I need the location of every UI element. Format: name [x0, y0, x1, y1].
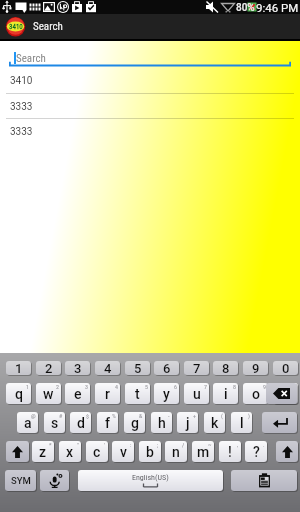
staticText: *: [49, 441, 52, 448]
staticText: 5: [145, 383, 148, 390]
button[interactable]: d: [70, 412, 91, 433]
staticText: 3333: [10, 101, 33, 113]
staticText: /: [182, 441, 185, 448]
button[interactable]: w: [36, 383, 61, 404]
button[interactable]: Space: [78, 470, 223, 491]
button[interactable]: 8: [213, 361, 238, 375]
button[interactable]: 5: [125, 361, 150, 375]
button[interactable]: 9: [243, 361, 268, 375]
staticText: %: [112, 412, 116, 419]
staticText: 7: [204, 383, 207, 390]
button[interactable]: g: [124, 412, 145, 433]
button[interactable]: Backspace: [266, 383, 297, 404]
staticText: t: [135, 386, 140, 402]
button[interactable]: 6: [154, 361, 179, 375]
staticText: Search: [16, 52, 46, 65]
staticText: k: [211, 415, 219, 431]
staticText: z: [39, 444, 47, 460]
button[interactable]: n: [165, 441, 187, 462]
button[interactable]: ?: [245, 441, 267, 462]
button[interactable]: s: [44, 412, 65, 433]
button[interactable]: Search: [0, 41, 300, 67]
staticText: 8: [233, 383, 236, 390]
staticText: 6: [174, 383, 177, 390]
staticText: Search: [33, 20, 63, 33]
button[interactable]: Voice input: [40, 470, 69, 491]
staticText: b: [146, 444, 154, 460]
button[interactable]: r: [95, 383, 120, 404]
staticText: n: [172, 444, 180, 460]
button[interactable]: i: [213, 383, 238, 404]
staticText: c: [93, 444, 101, 460]
button[interactable]: p: [273, 383, 298, 404]
button[interactable]: Enter: [262, 412, 297, 433]
staticText: 2: [45, 361, 53, 375]
button[interactable]: t: [125, 383, 150, 404]
button[interactable]: o: [243, 383, 268, 404]
button[interactable]: 4: [95, 361, 120, 375]
button[interactable]: v: [112, 441, 134, 462]
staticText: 6: [163, 361, 171, 375]
staticText: i: [224, 386, 228, 402]
button[interactable]: 3333: [0, 118, 300, 143]
button[interactable]: 3410: [0, 14, 300, 39]
staticText: ': [104, 441, 106, 448]
button[interactable]: Clipboard: [231, 470, 297, 491]
button[interactable]: 1: [6, 361, 31, 375]
button[interactable]: z: [32, 441, 54, 462]
staticText: #: [59, 412, 63, 419]
staticText: !: [228, 444, 232, 460]
button[interactable]: Shift: [276, 441, 298, 462]
staticText: 3333: [10, 126, 33, 138]
staticText: 9: [263, 383, 266, 390]
staticText: j: [186, 415, 190, 431]
staticText: @: [31, 412, 36, 419]
staticText: ": [77, 441, 79, 448]
button[interactable]: 0: [273, 361, 298, 375]
staticText: x: [66, 444, 74, 460]
button[interactable]: c: [86, 441, 108, 462]
staticText: u: [193, 386, 201, 402]
button[interactable]: k: [204, 412, 225, 433]
staticText: ,: [237, 441, 239, 448]
staticText: y: [163, 386, 170, 402]
button[interactable]: Shift: [6, 441, 29, 462]
button[interactable]: 7: [184, 361, 209, 375]
staticText: (: [221, 412, 223, 419]
button[interactable]: u: [184, 383, 209, 404]
staticText: 3410: [9, 23, 23, 31]
button[interactable]: 3: [65, 361, 90, 375]
staticText: g: [131, 415, 139, 431]
staticText: 4: [104, 361, 112, 375]
button[interactable]: 3410: [0, 67, 300, 93]
staticText: ): [248, 412, 250, 419]
button[interactable]: j: [177, 412, 198, 433]
staticText: 4: [115, 383, 118, 390]
button[interactable]: x: [59, 441, 81, 462]
button[interactable]: 2: [36, 361, 61, 375]
staticText: 1: [26, 383, 29, 390]
button[interactable]: !: [219, 441, 241, 462]
staticText: l: [240, 415, 244, 431]
button[interactable]: a: [17, 412, 38, 433]
staticText: $: [86, 412, 89, 419]
button[interactable]: l: [231, 412, 252, 433]
button[interactable]: b: [139, 441, 161, 462]
staticText: &: [139, 412, 143, 419]
button[interactable]: 3333: [0, 93, 300, 118]
staticText: q: [15, 386, 23, 402]
button[interactable]: h: [151, 412, 172, 433]
staticText: a: [24, 415, 32, 431]
button[interactable]: f: [97, 412, 118, 433]
staticText: f: [105, 415, 110, 431]
staticText: 3410: [10, 75, 33, 87]
staticText: :: [130, 441, 132, 448]
staticText: s: [51, 415, 59, 431]
button[interactable]: e: [65, 383, 90, 404]
button[interactable]: y: [154, 383, 179, 404]
staticText: 9:46 PM: [256, 1, 299, 14]
button[interactable]: m: [192, 441, 214, 462]
button[interactable]: SYM: [5, 470, 36, 491]
button[interactable]: q: [6, 383, 31, 404]
staticText: 8: [222, 361, 230, 375]
